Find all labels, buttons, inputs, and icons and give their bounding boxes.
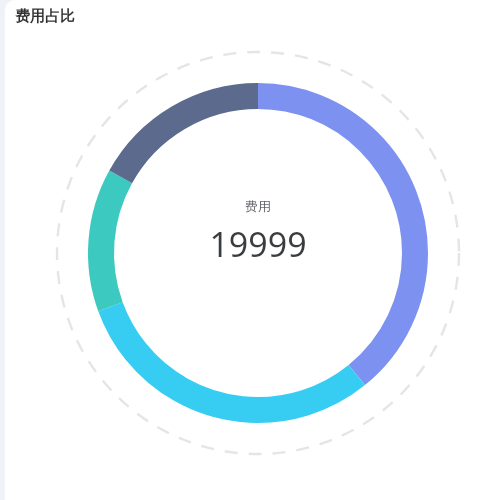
- staticText: 费用: [245, 198, 271, 214]
- button[interactable]: 费用占比: [5, 0, 500, 500]
- staticText: 19999: [209, 221, 307, 267]
- button[interactable]: 费用占比环形图: [88, 83, 428, 423]
- staticText: 费用占比: [15, 7, 75, 26]
